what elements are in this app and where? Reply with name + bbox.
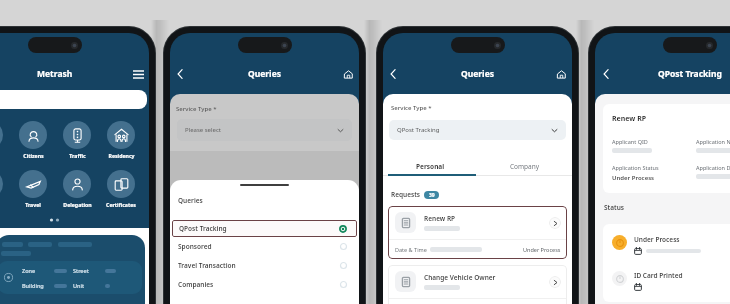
button[interactable]: Back — [386, 67, 400, 81]
staticText: Travel — [25, 201, 41, 208]
button[interactable]: Travel — [11, 170, 55, 208]
staticText: Applicant QID — [612, 138, 648, 145]
staticText: Companies — [178, 280, 214, 289]
staticText: QPost Tracking — [658, 68, 722, 80]
staticText: QPost Tracking — [179, 224, 227, 233]
button[interactable]: Back — [173, 67, 187, 81]
button[interactable]: Residency — [99, 121, 143, 159]
staticText: Status — [604, 203, 625, 212]
staticText: Travel Transaction — [178, 261, 236, 270]
staticText: Certificates — [106, 201, 136, 208]
button[interactable]: Company — [477, 158, 572, 174]
button[interactable]: QPost Tracking — [389, 120, 566, 140]
staticText: Personal — [416, 162, 445, 171]
staticText: Queries — [461, 68, 495, 80]
button[interactable]: Delegation — [55, 170, 99, 208]
button[interactable]: Visas — [0, 170, 11, 208]
button[interactable]: Sponsored — [170, 237, 359, 256]
staticText: Queries — [248, 68, 282, 80]
staticText: Service Type * — [391, 104, 432, 112]
button[interactable]: Travel Transaction — [170, 256, 359, 275]
button[interactable]: Change Vehicle Owner — [388, 265, 567, 304]
staticText: Date & Time — [395, 246, 427, 253]
staticText: Unit — [73, 282, 85, 289]
button[interactable]: Certificates — [99, 170, 143, 208]
staticText: Renew RP — [424, 214, 456, 223]
staticText: ID Card Printed — [634, 271, 683, 280]
staticText: Under Process — [634, 235, 680, 244]
staticText: Building — [22, 282, 44, 289]
staticText: Under Process — [523, 246, 561, 253]
button[interactable]: QPost Tracking — [172, 220, 357, 237]
button[interactable]: Home — [554, 67, 568, 81]
button[interactable]: Traffic — [55, 121, 99, 159]
staticText: Service Type * — [176, 105, 217, 113]
button[interactable]: Services — [0, 121, 11, 159]
staticText: Traffic — [69, 152, 86, 159]
button[interactable]: Please select — [177, 119, 352, 141]
staticText: Queries — [178, 196, 203, 205]
staticText: QPost Tracking — [397, 126, 440, 134]
staticText: Delegation — [63, 201, 92, 208]
button[interactable]: Citizens — [11, 121, 55, 159]
staticText: Application Status — [612, 164, 659, 171]
button[interactable]: Menu — [130, 66, 146, 82]
staticText: Requests — [391, 190, 421, 199]
button[interactable]: Companies — [170, 275, 359, 294]
staticText: Citizens — [23, 152, 44, 159]
staticText: 39 — [429, 192, 435, 199]
button[interactable]: Personal — [383, 158, 477, 174]
button[interactable]: Search — [0, 90, 147, 109]
staticText: Sponsored — [178, 242, 212, 251]
staticText: Under Process — [612, 174, 655, 182]
staticText: Zone — [22, 267, 36, 274]
staticText: Application Da — [696, 164, 730, 171]
staticText: Company — [510, 162, 540, 171]
staticText: Change Vehicle Owner — [424, 273, 496, 282]
staticText: Residency — [108, 152, 135, 159]
staticText: Metrash — [37, 68, 73, 80]
button[interactable]: Home — [341, 67, 355, 81]
staticText: Street — [73, 267, 89, 274]
staticText: Application Nu — [696, 138, 730, 145]
staticText: Please select — [185, 126, 221, 134]
staticText: Renew RP — [612, 114, 647, 124]
button[interactable]: Back — [599, 67, 613, 81]
button[interactable]: Renew RP — [388, 206, 567, 259]
